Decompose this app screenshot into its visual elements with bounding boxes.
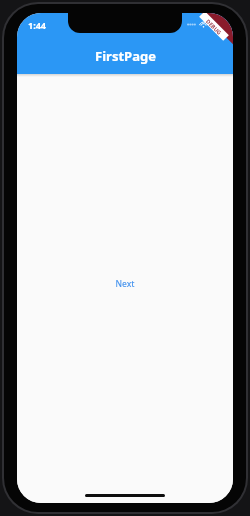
button[interactable]: Next bbox=[106, 273, 144, 295]
staticText: FirstPage bbox=[95, 47, 156, 65]
staticText: Next bbox=[115, 278, 135, 290]
other: Debug banner bbox=[187, 13, 233, 59]
staticText: DEBUG bbox=[205, 17, 223, 36]
staticText: 1:44 bbox=[28, 19, 46, 31]
